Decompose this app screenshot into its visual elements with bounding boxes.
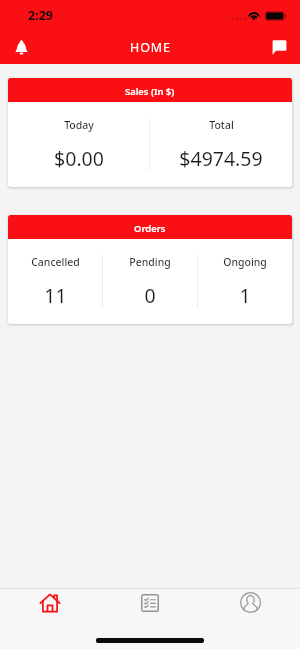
button[interactable]: Orders xyxy=(100,589,200,616)
staticText: $0.00 xyxy=(54,145,104,172)
staticText: $4974.59 xyxy=(179,145,263,172)
staticText: Sales (In $) xyxy=(125,85,175,98)
staticText: 1 xyxy=(239,282,251,309)
staticText: Orders xyxy=(134,222,166,235)
staticText: HOME xyxy=(130,39,171,56)
button[interactable]: Messages xyxy=(265,33,293,61)
staticText: Total xyxy=(209,118,234,132)
staticText: Ongoing xyxy=(223,255,267,269)
staticText: 11 xyxy=(44,282,67,309)
staticText: Pending xyxy=(129,255,171,269)
staticText: Cancelled xyxy=(31,255,80,269)
button[interactable]: Home xyxy=(0,589,100,616)
staticText: 2:29 xyxy=(28,7,53,24)
button[interactable]: Profile xyxy=(200,589,300,616)
staticText: Today xyxy=(64,118,94,132)
button[interactable]: Notifications xyxy=(7,33,35,61)
staticText: 0 xyxy=(144,282,156,309)
